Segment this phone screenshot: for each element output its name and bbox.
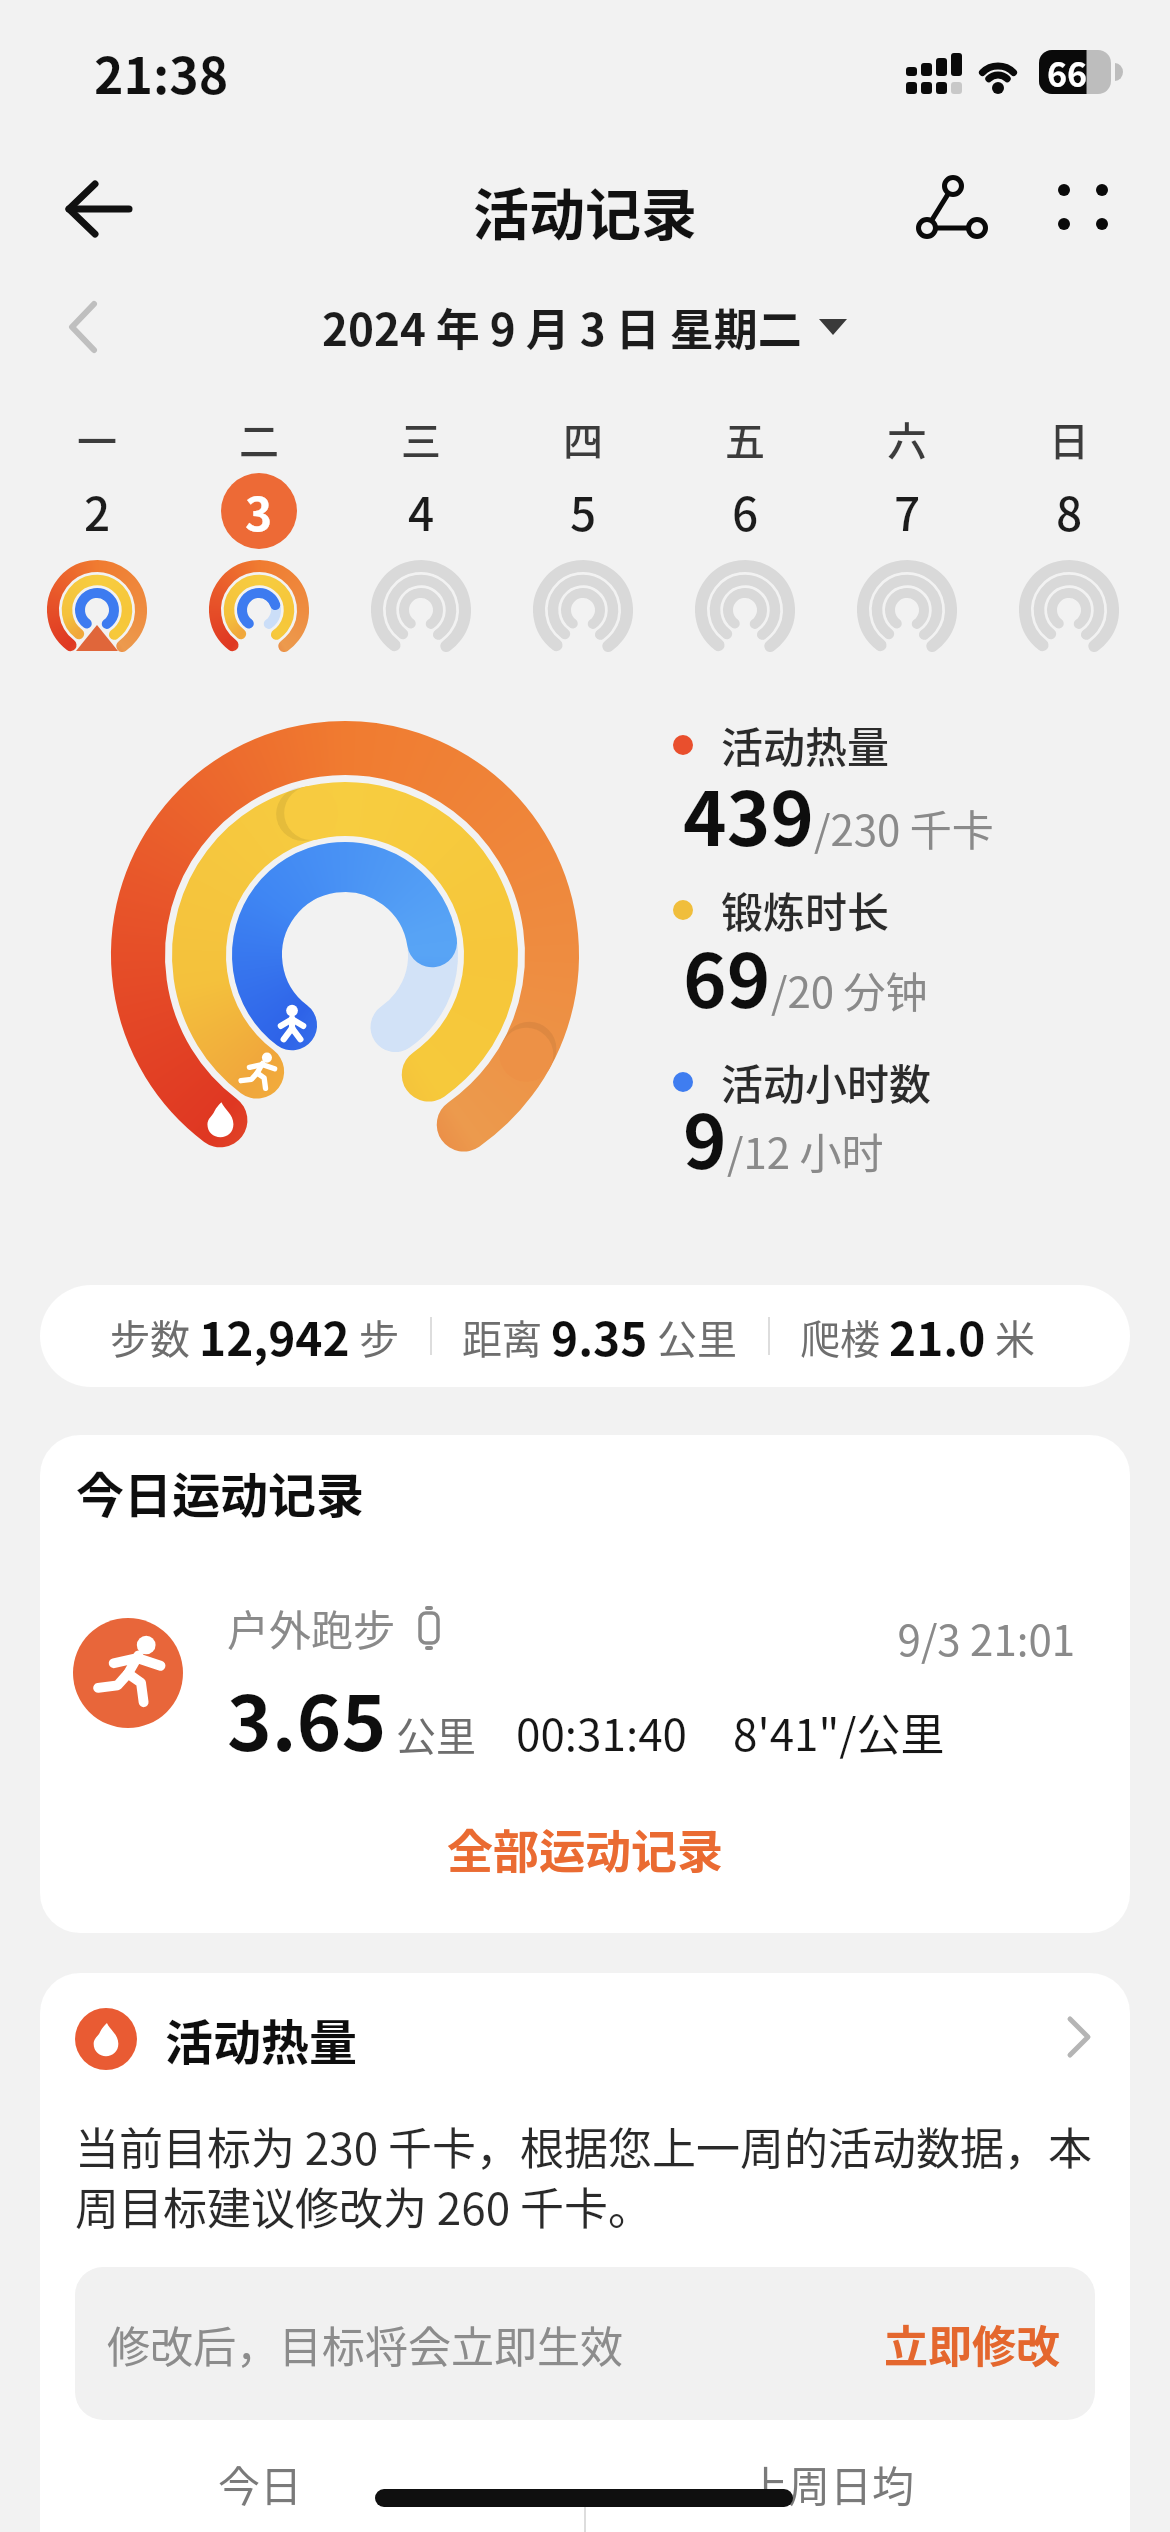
staticText: 8 bbox=[1056, 478, 1083, 545]
staticText: 21:38 bbox=[94, 36, 229, 108]
staticText: 距离 bbox=[462, 1308, 551, 1366]
staticText: 活动小时数 bbox=[721, 1051, 932, 1112]
staticText: 步 bbox=[350, 1308, 399, 1366]
staticText: 12,942 bbox=[199, 1303, 350, 1370]
staticText: 5 bbox=[570, 478, 597, 545]
staticText: 69 bbox=[683, 922, 771, 1029]
staticText: /20 分钟 bbox=[771, 959, 928, 1020]
staticText: 66 bbox=[1036, 48, 1098, 97]
staticText: 439 bbox=[683, 760, 814, 867]
button[interactable]: 6 bbox=[664, 472, 826, 550]
staticText: 3.65 bbox=[227, 1663, 387, 1773]
staticText: 爬楼 bbox=[800, 1308, 889, 1366]
button[interactable] bbox=[73, 1618, 1130, 1728]
staticText: 2 bbox=[84, 478, 111, 545]
button[interactable]: 今日 bbox=[160, 2448, 360, 2518]
staticText: 四 bbox=[563, 410, 603, 466]
staticText: 五 bbox=[725, 410, 765, 466]
button[interactable]: 2 bbox=[16, 472, 178, 550]
button[interactable]: 2024 年 9 月 3 日 星期二 bbox=[0, 295, 1170, 359]
button[interactable]: 全部运动记录 bbox=[40, 1808, 1130, 1888]
staticText: 米 bbox=[986, 1308, 1035, 1366]
button[interactable]: 8 bbox=[988, 472, 1150, 550]
staticText: 修改后，目标将会立即生效 bbox=[107, 2313, 623, 2375]
button[interactable]: 7 bbox=[826, 472, 988, 550]
staticText: 今日 bbox=[218, 2453, 303, 2514]
staticText: 活动热量 bbox=[721, 714, 890, 775]
staticText: 8'41"/公里 bbox=[733, 1700, 945, 1764]
staticText: 二 bbox=[239, 410, 279, 466]
button[interactable]: 3 bbox=[178, 472, 340, 550]
button[interactable]: 5 bbox=[502, 472, 664, 550]
staticText: 日 bbox=[1049, 410, 1089, 466]
staticText: 4 bbox=[408, 478, 435, 545]
staticText: 6 bbox=[732, 478, 759, 545]
staticText: 9 bbox=[683, 1083, 727, 1190]
staticText: 周目标建议修改为 260 千卡。 bbox=[75, 2174, 652, 2238]
staticText: 9.35 bbox=[551, 1303, 648, 1370]
staticText: 全部运动记录 bbox=[447, 1815, 723, 1882]
staticText: 9/3 21:01 bbox=[40, 1607, 1075, 1668]
button[interactable]: 上周日均 bbox=[680, 2448, 980, 2518]
staticText: 3 bbox=[245, 478, 273, 545]
staticText: 锻炼时长 bbox=[721, 879, 890, 940]
staticText: 21.0 bbox=[889, 1303, 986, 1370]
staticText: 公里 bbox=[387, 1705, 476, 1763]
staticText: /12 小时 bbox=[727, 1120, 884, 1181]
staticText: 00:31:40 bbox=[516, 1700, 687, 1764]
button[interactable] bbox=[1040, 170, 1130, 250]
staticText: 户外跑步 bbox=[227, 1597, 396, 1658]
staticText: 7 bbox=[894, 478, 921, 545]
staticText: /230 千卡 bbox=[814, 797, 994, 858]
staticText: 一 bbox=[77, 410, 117, 466]
staticText: 六 bbox=[887, 410, 927, 466]
button[interactable] bbox=[55, 175, 145, 245]
staticText: 步数 bbox=[110, 1308, 199, 1366]
button[interactable]: 4 bbox=[340, 472, 502, 550]
button[interactable]: 修改后，目标将会立即生效 bbox=[107, 2267, 1060, 2420]
staticText: 立即修改 bbox=[884, 2312, 1060, 2376]
button[interactable]: 活动热量 bbox=[75, 2004, 358, 2074]
staticText: 上周日均 bbox=[746, 2453, 915, 2514]
button[interactable] bbox=[900, 170, 1010, 250]
staticText: 当前目标为 230 千卡，根据您上一周的活动数据，本 bbox=[75, 2114, 1092, 2178]
staticText: 2024 年 9 月 3 日 星期二 bbox=[322, 295, 802, 359]
staticText: 活动热量 bbox=[165, 2004, 358, 2074]
staticText: 三 bbox=[401, 410, 441, 466]
staticText: 活动记录 bbox=[473, 170, 697, 250]
staticText: 公里 bbox=[648, 1308, 737, 1366]
staticText: 今日运动记录 bbox=[76, 1457, 365, 1527]
button[interactable]: 步数 bbox=[110, 1285, 1035, 1387]
